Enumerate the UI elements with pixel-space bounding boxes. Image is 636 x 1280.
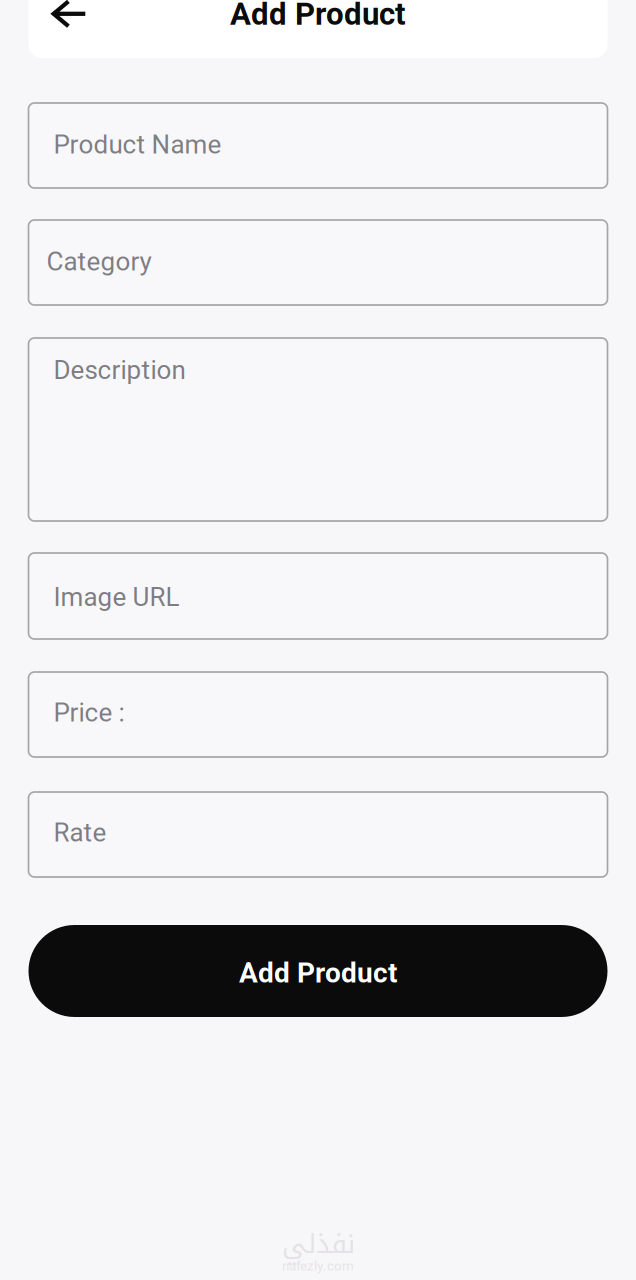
- staticText: Description: [53, 355, 185, 385]
- staticText: nafezly.com: [282, 1258, 354, 1274]
- button[interactable]: Product Name: [28, 103, 607, 188]
- staticText: Add Product: [239, 957, 397, 989]
- button[interactable]: Description: [28, 338, 607, 521]
- staticText: Category: [46, 246, 151, 277]
- button[interactable]: Price :: [28, 672, 607, 757]
- staticText: Rate: [53, 817, 106, 848]
- staticText: Price :: [53, 697, 124, 728]
- staticText: Product Name: [53, 129, 221, 160]
- button[interactable]: Rate: [28, 792, 607, 877]
- button[interactable]: Add Product: [28, 925, 607, 1017]
- button[interactable]: Image URL: [28, 553, 607, 639]
- staticText: نفذلي: [281, 1219, 354, 1269]
- button[interactable]: Category: [28, 220, 607, 305]
- button[interactable]: Back: [28, 0, 87, 42]
- staticText: Add Product: [230, 0, 406, 32]
- staticText: Image URL: [53, 582, 179, 612]
